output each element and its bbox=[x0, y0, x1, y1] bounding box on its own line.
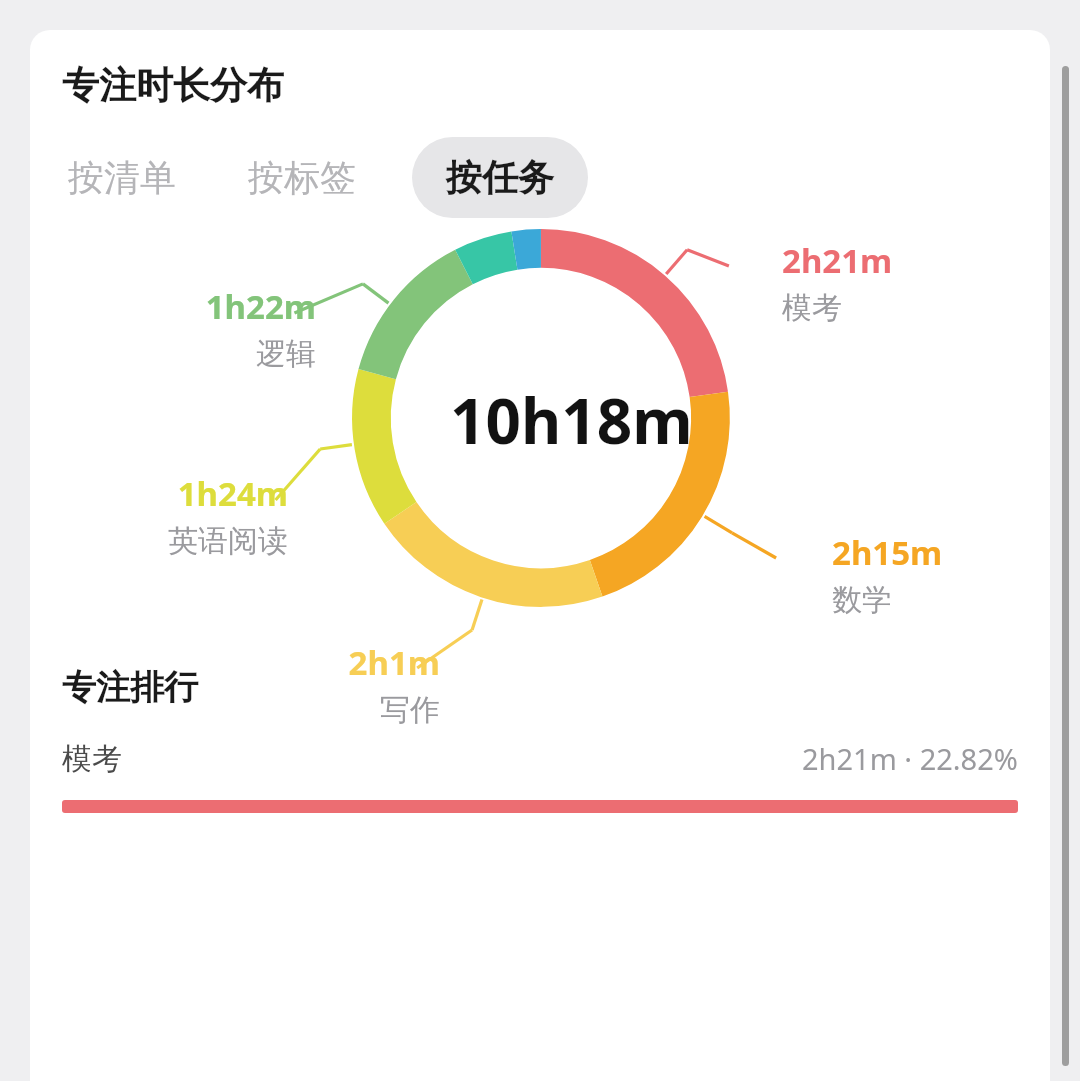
staticText: 专注排行 bbox=[62, 666, 198, 709]
staticText: 2h21m bbox=[782, 238, 893, 283]
staticText: 2h15m bbox=[832, 530, 943, 575]
staticText: 英语阅读 bbox=[168, 522, 288, 560]
staticText: 10h18m bbox=[450, 378, 693, 458]
button[interactable]: 2h15m bbox=[832, 530, 943, 619]
button[interactable]: 按标签 bbox=[242, 137, 362, 218]
staticText: 按任务 bbox=[446, 155, 554, 200]
staticText: 逻辑 bbox=[256, 335, 316, 373]
button[interactable]: 模考 bbox=[30, 739, 1050, 813]
button[interactable]: 2h21m bbox=[782, 238, 893, 327]
button[interactable]: 1h24m bbox=[30, 471, 288, 560]
staticText: 2h1m bbox=[348, 640, 440, 685]
staticText: 模考 bbox=[782, 289, 842, 327]
staticText: 专注时长分布 bbox=[62, 62, 284, 109]
button[interactable]: 1h22m bbox=[30, 284, 316, 373]
staticText: 模考 bbox=[62, 740, 122, 778]
button[interactable]: 按清单 bbox=[62, 137, 182, 218]
staticText: 1h24m bbox=[177, 471, 288, 516]
button[interactable]: 2h1m bbox=[170, 640, 440, 729]
staticText: 写作 bbox=[380, 691, 440, 729]
staticText: 数学 bbox=[832, 581, 892, 619]
staticText: 1h22m bbox=[205, 284, 316, 329]
staticText: 2h21m · 22.82% bbox=[802, 739, 1018, 778]
staticText: 按清单 bbox=[68, 155, 176, 200]
button[interactable]: 按任务 bbox=[412, 137, 588, 218]
staticText: 按标签 bbox=[248, 155, 356, 200]
